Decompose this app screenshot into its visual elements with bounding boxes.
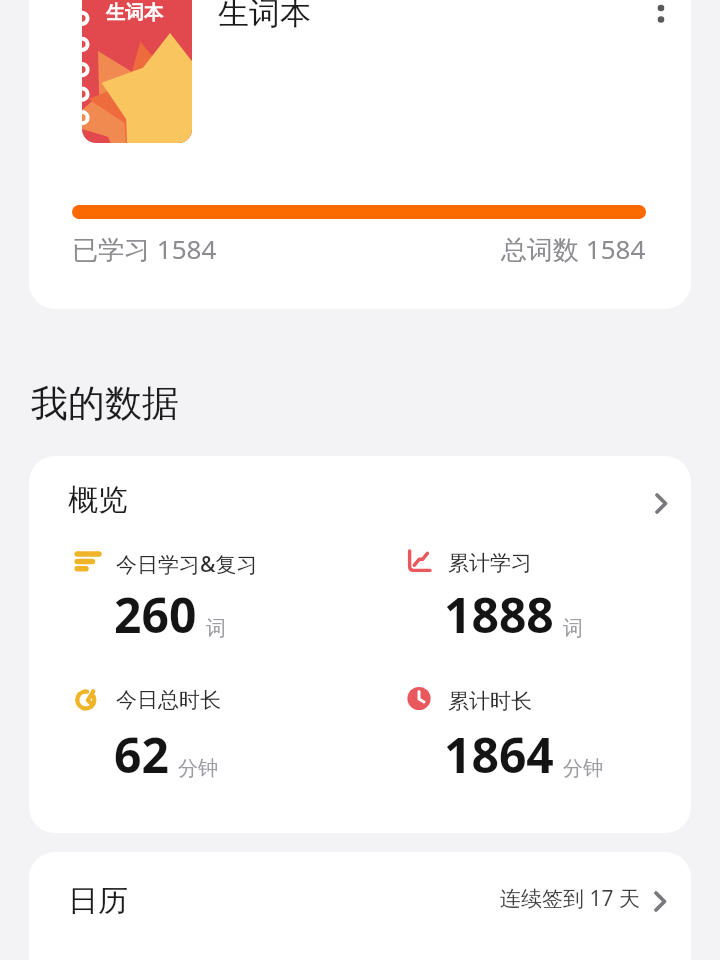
staticText: 分钟: [178, 756, 218, 781]
staticText: 累计学习: [448, 550, 532, 576]
staticText: 62: [114, 722, 169, 787]
button[interactable]: [29, 0, 691, 309]
staticText: 总词数 1584: [501, 231, 646, 267]
staticText: 已学习 1584: [72, 231, 217, 267]
staticText: 词: [206, 616, 226, 641]
staticText: 今日学习&复习: [116, 550, 258, 579]
staticText: 词: [563, 616, 583, 641]
button[interactable]: [29, 456, 691, 833]
staticText: 今日总时长: [116, 687, 221, 713]
staticText: 260: [114, 582, 197, 647]
staticText: 分钟: [563, 756, 603, 781]
staticText: 生词本: [106, 1, 163, 25]
button[interactable]: [29, 852, 691, 960]
staticText: 1864: [444, 722, 554, 787]
button[interactable]: [643, 0, 679, 34]
staticText: 累计时长: [448, 688, 532, 714]
staticText: 概览: [68, 481, 128, 519]
staticText: 日历: [68, 882, 128, 920]
staticText: 1888: [444, 582, 554, 647]
staticText: 连续签到 17 天: [500, 884, 640, 913]
staticText: 生词本: [218, 0, 311, 33]
staticText: 我的数据: [31, 380, 179, 427]
